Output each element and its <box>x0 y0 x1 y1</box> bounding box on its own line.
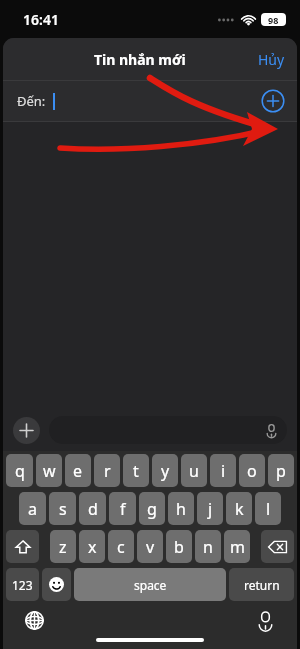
other: Voice input <box>265 424 278 437</box>
staticText: o <box>247 460 257 482</box>
staticText: q <box>15 460 25 482</box>
staticText: Đến: <box>17 92 46 110</box>
staticText: Hủy <box>258 50 285 69</box>
button[interactable]: y <box>152 454 178 487</box>
staticText: f <box>120 498 126 520</box>
button[interactable]: e <box>65 454 91 487</box>
button[interactable]: c <box>108 530 134 563</box>
staticText: b <box>174 536 184 558</box>
button[interactable]: q <box>6 454 33 487</box>
staticText: s <box>59 498 67 520</box>
staticText: u <box>189 460 199 482</box>
staticText: return <box>244 577 280 593</box>
button[interactable]: h <box>168 492 194 525</box>
button[interactable]: Voice input <box>49 416 287 444</box>
button[interactable]: f <box>109 492 136 525</box>
staticText: n <box>203 536 213 558</box>
staticText: p <box>276 460 286 482</box>
button[interactable]: v <box>137 530 163 563</box>
staticText: v <box>146 536 155 558</box>
button[interactable] <box>261 530 294 563</box>
button[interactable]: s <box>49 492 76 525</box>
button[interactable]: m <box>224 530 250 563</box>
button[interactable]: Add contact <box>261 89 285 113</box>
staticText: t <box>133 460 139 482</box>
button[interactable] <box>42 568 71 601</box>
staticText: 123 <box>12 577 33 593</box>
button[interactable]: u <box>181 454 207 487</box>
staticText: w <box>43 460 56 482</box>
staticText: 16:41 <box>23 10 59 29</box>
staticText: j <box>208 498 213 520</box>
button[interactable]: k <box>226 492 252 525</box>
button[interactable]: Hủy <box>246 42 297 77</box>
button[interactable]: r <box>94 454 120 487</box>
button[interactable]: z <box>50 530 76 563</box>
button[interactable]: Dictation <box>256 611 275 630</box>
button[interactable]: l <box>255 492 281 525</box>
staticText: g <box>147 498 157 520</box>
staticText: d <box>88 498 98 520</box>
staticText: Tin nhắn mới <box>94 50 186 69</box>
button[interactable]: Change keyboard language <box>25 611 44 630</box>
button[interactable] <box>6 530 39 563</box>
button[interactable]: 123 <box>6 568 39 601</box>
button[interactable]: p <box>268 454 294 487</box>
button[interactable]: space <box>74 568 226 601</box>
button[interactable]: o <box>239 454 265 487</box>
staticText: l <box>266 498 271 520</box>
button[interactable]: a <box>19 492 46 525</box>
staticText: c <box>117 536 125 558</box>
button[interactable]: j <box>197 492 223 525</box>
staticText: m <box>230 536 245 558</box>
staticText: a <box>28 498 37 520</box>
button[interactable]: Add attachment <box>13 417 40 444</box>
staticText: e <box>73 460 83 482</box>
staticText: r <box>104 460 111 482</box>
staticText: z <box>59 536 67 558</box>
staticText: h <box>176 498 186 520</box>
button[interactable]: n <box>195 530 221 563</box>
staticText: x <box>88 536 97 558</box>
staticText: 98 <box>268 14 279 26</box>
staticText: i <box>221 460 226 482</box>
button[interactable]: b <box>166 530 192 563</box>
button[interactable]: t <box>123 454 149 487</box>
staticText: y <box>161 460 170 482</box>
button[interactable]: d <box>79 492 106 525</box>
staticText: space <box>134 577 167 593</box>
button[interactable]: x <box>79 530 105 563</box>
button[interactable]: w <box>36 454 62 487</box>
staticText: k <box>235 498 244 520</box>
button[interactable]: return <box>229 568 294 601</box>
button[interactable]: g <box>139 492 165 525</box>
button[interactable]: i <box>210 454 236 487</box>
